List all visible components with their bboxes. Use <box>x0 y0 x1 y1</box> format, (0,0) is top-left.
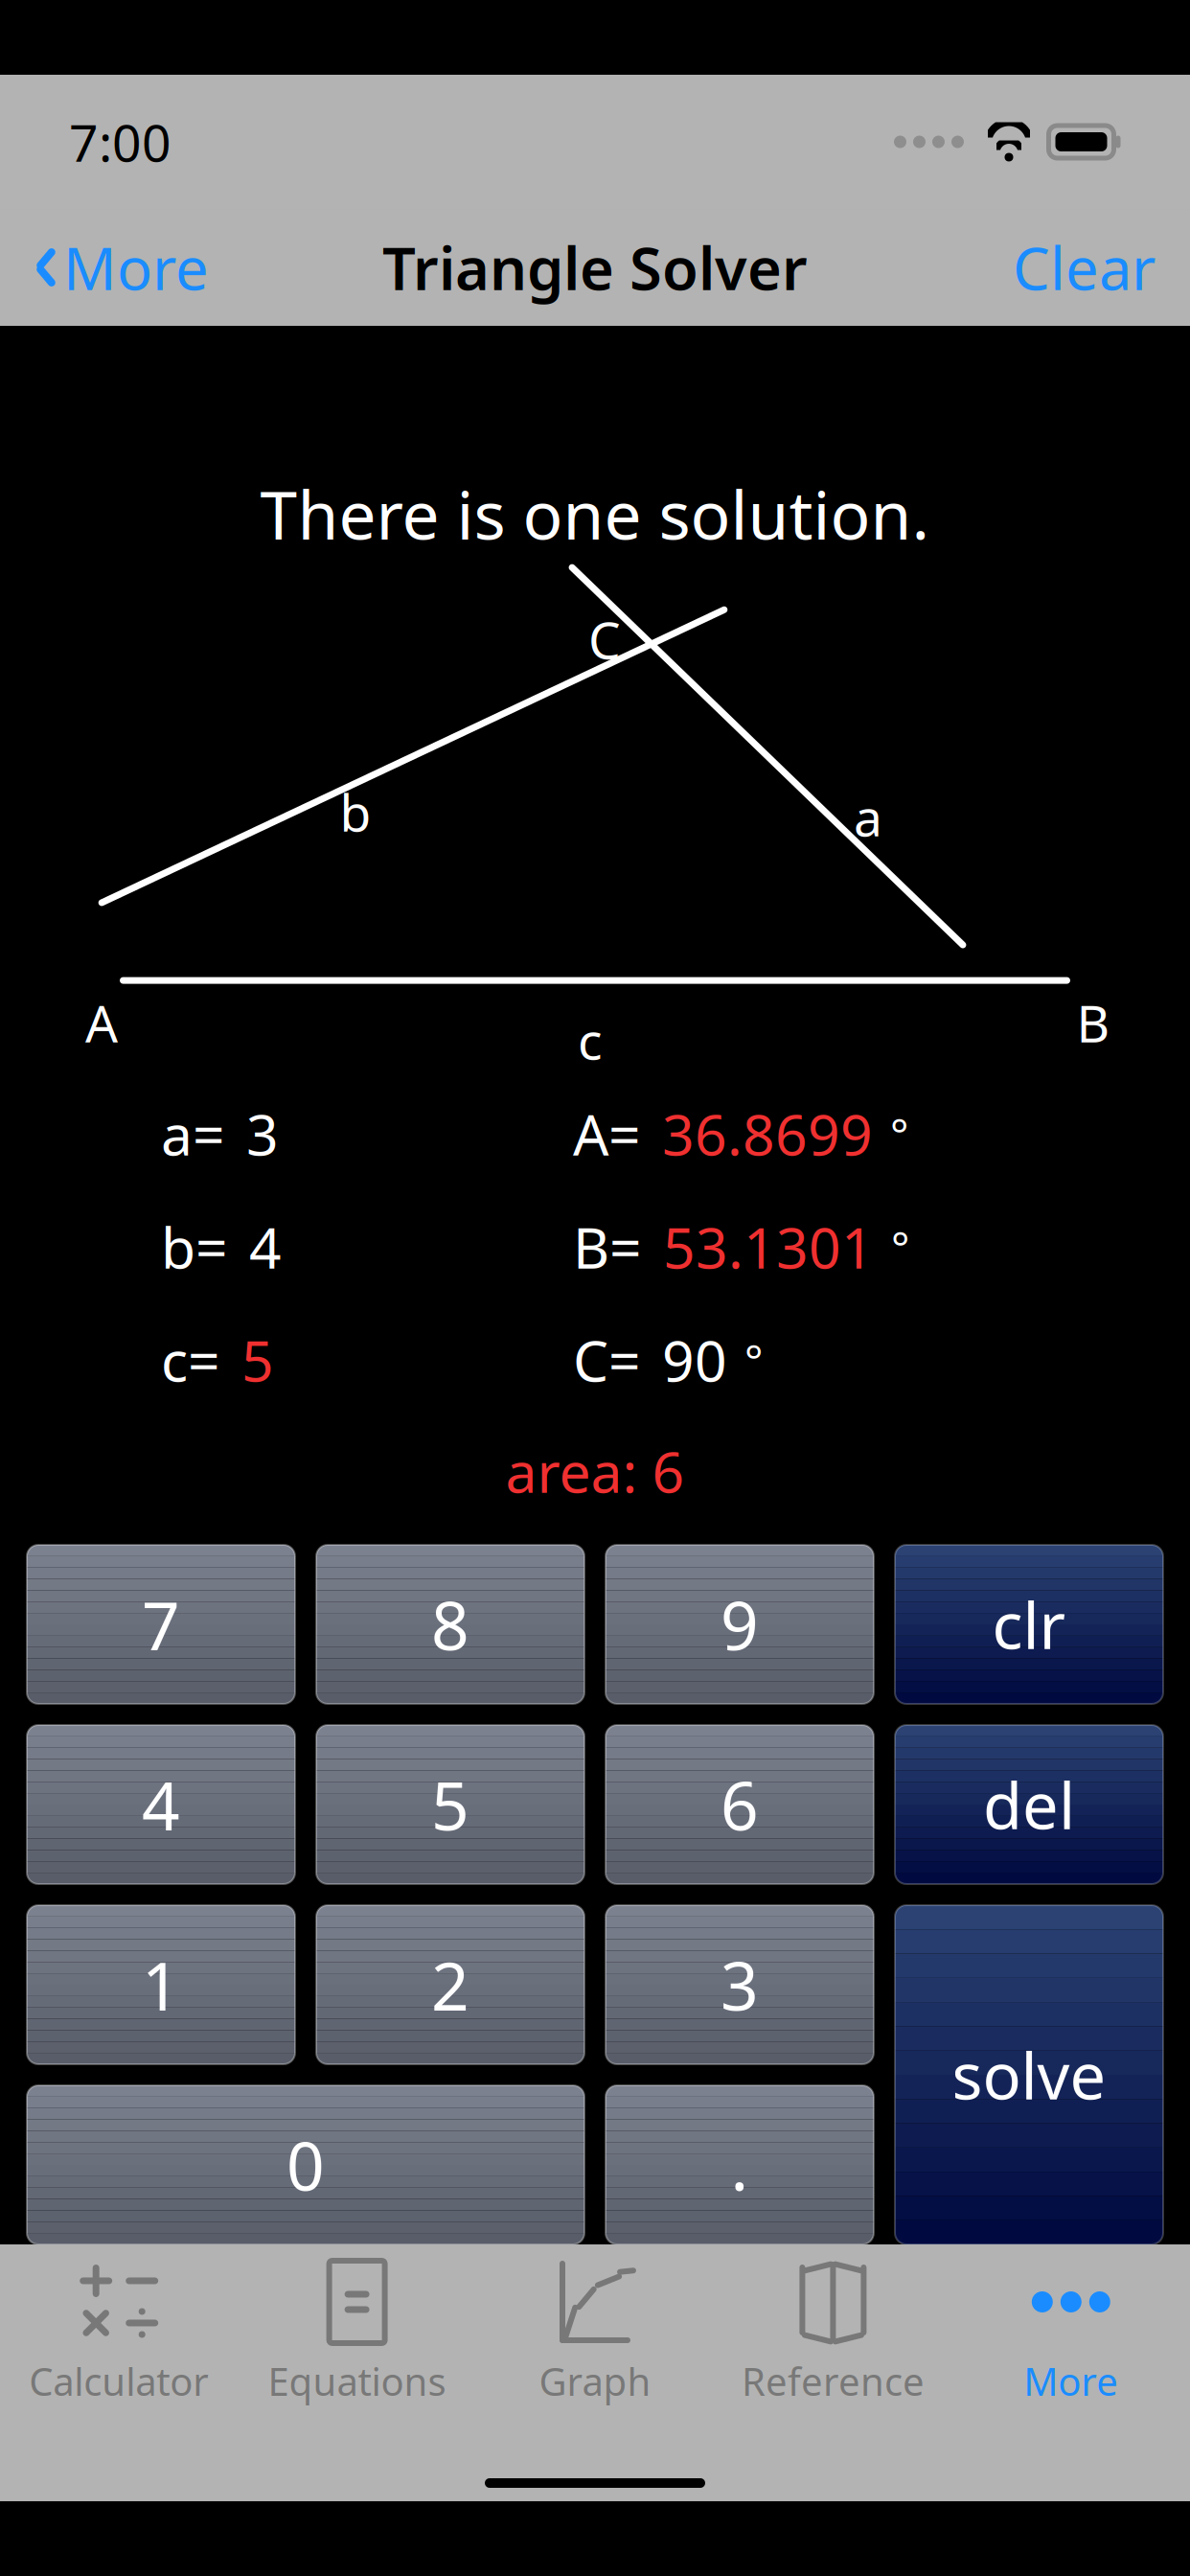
button[interactable]: 4 <box>27 1725 295 1884</box>
button[interactable]: Graph <box>476 2244 714 2416</box>
button[interactable]: del <box>895 1725 1163 1884</box>
button[interactable]: 0 <box>27 2085 584 2244</box>
staticText: solve <box>952 2032 1106 2117</box>
staticText: More <box>63 228 209 306</box>
staticText: Triangle Solver <box>382 228 808 306</box>
staticText: b <box>340 778 371 846</box>
button[interactable]: 3 <box>606 1905 874 2064</box>
staticText: Graph <box>539 2356 651 2406</box>
staticText: . <box>731 2121 749 2209</box>
staticText: C <box>588 605 621 673</box>
staticText: 2 <box>431 1941 469 2029</box>
staticText: 5 <box>431 1760 469 1849</box>
staticText: 8 <box>431 1580 469 1669</box>
staticText: del <box>983 1762 1075 1847</box>
staticText: 4 <box>249 1210 282 1284</box>
button[interactable]: More <box>21 217 222 318</box>
staticText: A <box>85 989 118 1057</box>
staticText: 4 <box>142 1760 180 1849</box>
button[interactable]: solve <box>895 1905 1163 2244</box>
staticText: a= <box>161 1096 225 1171</box>
button[interactable]: 8 <box>316 1545 584 1704</box>
button[interactable]: 5 <box>316 1725 584 1884</box>
staticText: 5 <box>241 1323 274 1397</box>
staticText: c= <box>161 1323 220 1397</box>
staticText: ° <box>890 1105 908 1163</box>
staticText: Clear <box>1013 228 1156 306</box>
staticText: Calculator <box>29 2356 209 2406</box>
staticText: 36.8699 <box>662 1096 873 1171</box>
staticText: Reference <box>741 2356 925 2406</box>
staticText: 1 <box>142 1941 180 2029</box>
staticText: C= <box>573 1323 641 1397</box>
staticText: B= <box>573 1210 642 1284</box>
staticText: 53.1301 <box>663 1210 874 1284</box>
button[interactable]: Equations <box>238 2244 476 2416</box>
button[interactable]: clr <box>895 1545 1163 1704</box>
staticText: 90 <box>662 1323 727 1397</box>
button[interactable]: . <box>606 2085 874 2244</box>
button[interactable]: Reference <box>714 2244 952 2416</box>
button[interactable]: 9 <box>606 1545 874 1704</box>
staticText: clr <box>992 1582 1066 1667</box>
button[interactable]: Clear <box>999 217 1169 318</box>
button[interactable]: 6 <box>606 1725 874 1884</box>
staticText: B <box>1076 989 1110 1057</box>
button[interactable]: 7 <box>27 1545 295 1704</box>
staticText: area: 6 <box>505 1434 685 1508</box>
staticText: A= <box>573 1096 641 1171</box>
button[interactable]: 2 <box>316 1905 584 2064</box>
button[interactable]: Calculator <box>0 2244 238 2416</box>
staticText: ° <box>891 1218 909 1276</box>
staticText: 7 <box>142 1580 180 1669</box>
button[interactable]: 1 <box>27 1905 295 2064</box>
staticText: Equations <box>268 2356 446 2406</box>
staticText: 3 <box>246 1096 279 1171</box>
button[interactable]: More <box>952 2244 1190 2416</box>
staticText: 7:00 <box>69 108 172 176</box>
staticText: b= <box>161 1210 228 1284</box>
staticText: 6 <box>721 1760 759 1849</box>
staticText: There is one solution. <box>260 470 930 558</box>
staticText: More <box>1024 2356 1118 2406</box>
staticText: c <box>578 1006 603 1074</box>
staticText: ° <box>744 1331 763 1389</box>
staticText: 3 <box>721 1941 759 2029</box>
staticText: 9 <box>721 1580 759 1669</box>
staticText: 0 <box>286 2121 325 2209</box>
staticText: a <box>854 783 882 851</box>
